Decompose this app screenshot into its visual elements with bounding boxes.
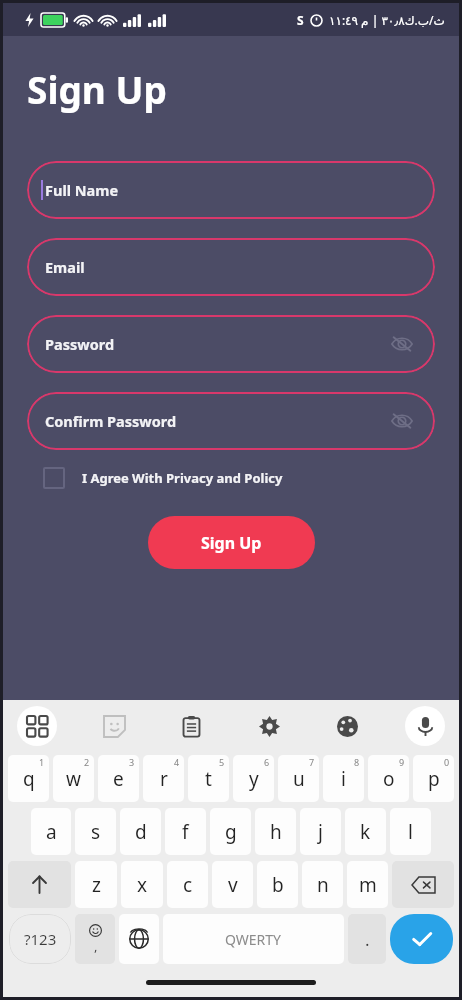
staticText: a	[46, 819, 57, 845]
button[interactable]: d	[120, 808, 161, 855]
staticText: ?123	[24, 929, 57, 949]
button[interactable]: Themes	[327, 706, 367, 746]
staticText: y	[249, 766, 259, 792]
staticText: I Agree With Privacy and Policy	[82, 469, 283, 487]
staticText: .	[365, 928, 370, 951]
button[interactable]: j	[300, 808, 341, 855]
button[interactable]: .	[348, 914, 386, 964]
staticText: r	[160, 766, 168, 792]
staticText: Confirm Password	[45, 411, 177, 431]
staticText: ,	[94, 937, 98, 955]
staticText: b	[272, 872, 284, 898]
staticText: 3	[129, 756, 135, 768]
staticText: f	[182, 819, 189, 845]
staticText: Email	[45, 257, 85, 277]
button[interactable]: Sign Up	[148, 516, 315, 569]
staticText: Sign Up	[201, 532, 262, 554]
staticText: 2	[84, 756, 90, 768]
staticText: Full Name	[45, 180, 119, 200]
staticText: z	[92, 872, 101, 898]
staticText: Password	[45, 334, 115, 354]
staticText: QWERTY	[225, 930, 282, 949]
button[interactable]: e	[98, 755, 139, 802]
staticText: 1	[39, 756, 45, 768]
staticText: n	[317, 872, 329, 898]
staticText: 6	[264, 756, 270, 768]
button[interactable]: Clipboard	[171, 706, 211, 746]
staticText: 9	[399, 756, 405, 768]
button[interactable]: Password	[27, 315, 435, 373]
staticText: s	[91, 819, 101, 845]
staticText: u	[293, 766, 305, 792]
button[interactable]: Enter	[390, 914, 453, 964]
staticText: d	[135, 819, 147, 845]
button[interactable]: Keyboard layouts	[17, 706, 57, 746]
button[interactable]: s	[75, 808, 116, 855]
button[interactable]: Toggle password visibility	[389, 408, 415, 434]
button[interactable]: QWERTY	[163, 914, 344, 964]
button[interactable]: c	[167, 861, 208, 908]
button[interactable]: w	[53, 755, 94, 802]
button[interactable]: Email	[27, 238, 435, 296]
button[interactable]: i	[323, 755, 364, 802]
button[interactable]: t	[188, 755, 229, 802]
button[interactable]: x	[121, 861, 163, 908]
button[interactable]: Backspace	[392, 861, 454, 908]
button[interactable]: Toggle password visibility	[389, 331, 415, 357]
staticText: c	[183, 872, 193, 898]
staticText: 7	[309, 756, 315, 768]
staticText: j	[318, 819, 323, 845]
button[interactable]: Stickers	[94, 706, 134, 746]
staticText: l	[408, 819, 413, 845]
button[interactable]: a	[31, 808, 71, 855]
staticText: 5	[219, 756, 225, 768]
button[interactable]: Confirm Password	[27, 392, 435, 450]
button[interactable]: h	[255, 808, 296, 855]
button[interactable]: p	[413, 755, 454, 802]
button[interactable]: z	[75, 861, 117, 908]
button[interactable]: Settings	[249, 706, 289, 746]
staticText: w	[66, 766, 81, 792]
staticText: i	[341, 766, 346, 792]
button[interactable]: n	[302, 861, 343, 908]
button[interactable]: Change language	[119, 914, 159, 964]
button[interactable]: f	[165, 808, 206, 855]
button[interactable]: r	[143, 755, 184, 802]
staticText: 8	[354, 756, 360, 768]
button[interactable]: Full Name	[27, 161, 435, 219]
button[interactable]: q	[8, 755, 49, 802]
staticText: Sign Up	[27, 64, 167, 114]
staticText: o	[383, 766, 395, 792]
button[interactable]: I Agree With Privacy and Policy	[43, 467, 283, 489]
button[interactable]: m	[347, 861, 388, 908]
staticText: 4	[174, 756, 180, 768]
staticText: q	[23, 766, 35, 792]
staticText: ث/ب.ك٣٠٫٨ | م ١١:٤٩	[329, 12, 445, 28]
button[interactable]: v	[212, 861, 253, 908]
button[interactable]: l	[390, 808, 431, 855]
staticText: g	[225, 819, 237, 845]
button[interactable]: u	[278, 755, 319, 802]
staticText: k	[360, 819, 371, 845]
staticText: 0	[444, 756, 450, 768]
staticText: v	[228, 872, 238, 898]
staticText: t	[205, 766, 212, 792]
staticText: p	[428, 766, 440, 792]
staticText: e	[113, 766, 124, 792]
staticText: x	[137, 872, 148, 898]
staticText: h	[270, 819, 282, 845]
button[interactable]: Emoji and comma	[75, 914, 115, 964]
button[interactable]: o	[368, 755, 409, 802]
button[interactable]: b	[257, 861, 298, 908]
button[interactable]: ?123	[9, 914, 71, 964]
button[interactable]: g	[210, 808, 251, 855]
staticText: S	[297, 12, 304, 28]
staticText: m	[359, 872, 377, 898]
button[interactable]: Voice input	[405, 706, 445, 746]
button[interactable]: Shift	[8, 861, 71, 908]
button[interactable]: y	[233, 755, 274, 802]
button[interactable]: k	[345, 808, 386, 855]
